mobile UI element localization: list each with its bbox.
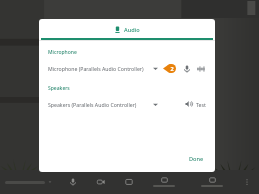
button[interactable]: Microphone (Parallels Audio Controller) bbox=[48, 61, 163, 75]
staticText: Audio bbox=[124, 26, 140, 34]
button[interactable] bbox=[198, 177, 226, 187]
button[interactable] bbox=[150, 177, 178, 187]
button[interactable]: Done bbox=[184, 152, 209, 166]
other: Input level bbox=[195, 63, 206, 74]
staticText: 2 bbox=[170, 65, 174, 72]
button[interactable]: Present screen bbox=[122, 175, 136, 189]
button[interactable]: Microphone bbox=[66, 175, 80, 189]
staticText: Speakers (Parallels Audio Controller) bbox=[48, 101, 137, 108]
staticText: Test bbox=[196, 101, 206, 108]
staticText: Done bbox=[189, 155, 204, 163]
staticText: Microphone bbox=[48, 49, 77, 56]
button[interactable]: More options bbox=[240, 175, 254, 189]
button[interactable]: Audio bbox=[39, 19, 215, 40]
staticText: Speakers bbox=[48, 85, 70, 92]
button[interactable]: Speakers (Parallels Audio Controller) bbox=[48, 97, 163, 111]
other: Step 2 bbox=[163, 64, 176, 73]
button[interactable]: Microphone bbox=[181, 63, 192, 74]
staticText: Microphone (Parallels Audio Controller) bbox=[48, 65, 144, 72]
button[interactable]: Camera bbox=[94, 175, 108, 189]
button[interactable]: Test bbox=[185, 97, 206, 111]
